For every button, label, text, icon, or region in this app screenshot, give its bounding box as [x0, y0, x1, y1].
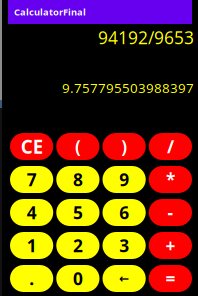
button[interactable]: 1: [10, 232, 53, 259]
staticText: CE: [21, 134, 43, 159]
staticText: (: [75, 135, 81, 158]
button[interactable]: 5: [56, 199, 99, 226]
button[interactable]: CE: [10, 133, 53, 160]
staticText: 8: [73, 168, 83, 191]
button[interactable]: 2: [56, 232, 99, 259]
staticText: 9: [119, 168, 129, 191]
button[interactable]: 9: [102, 166, 146, 193]
button[interactable]: Plus: [149, 232, 192, 259]
staticText: 94192/9653: [98, 26, 194, 49]
staticText: 9.757795503988397: [62, 79, 194, 97]
staticText: *: [166, 168, 175, 191]
staticText: 5: [73, 201, 83, 224]
button[interactable]: 7: [10, 166, 53, 193]
button[interactable]: 8: [56, 166, 99, 193]
button[interactable]: Multiply: [149, 166, 192, 193]
staticText: 2: [73, 234, 83, 257]
button[interactable]: 3: [102, 232, 146, 259]
button[interactable]: 6: [102, 199, 146, 226]
staticText: ←: [119, 272, 129, 285]
staticText: -: [167, 201, 173, 224]
staticText: +: [165, 234, 175, 257]
staticText: /: [167, 135, 174, 158]
staticText: 6: [119, 201, 129, 224]
staticText: .: [29, 267, 34, 290]
button[interactable]: Backspace: [102, 265, 146, 292]
button[interactable]: ): [102, 133, 146, 160]
staticText: ): [121, 135, 127, 158]
button[interactable]: (: [56, 133, 99, 160]
staticText: =: [165, 267, 175, 290]
staticText: 3: [119, 234, 129, 257]
staticText: 0: [73, 267, 83, 290]
staticText: 7: [27, 168, 37, 191]
button[interactable]: .: [10, 265, 53, 292]
button[interactable]: Equals: [149, 265, 192, 292]
staticText: CalculatorFinal: [14, 6, 86, 18]
button[interactable]: 4: [10, 199, 53, 226]
staticText: 1: [27, 234, 37, 257]
staticText: 4: [27, 201, 37, 224]
button[interactable]: Divide: [149, 133, 192, 160]
button[interactable]: Minus: [149, 199, 192, 226]
button[interactable]: 0: [56, 265, 99, 292]
